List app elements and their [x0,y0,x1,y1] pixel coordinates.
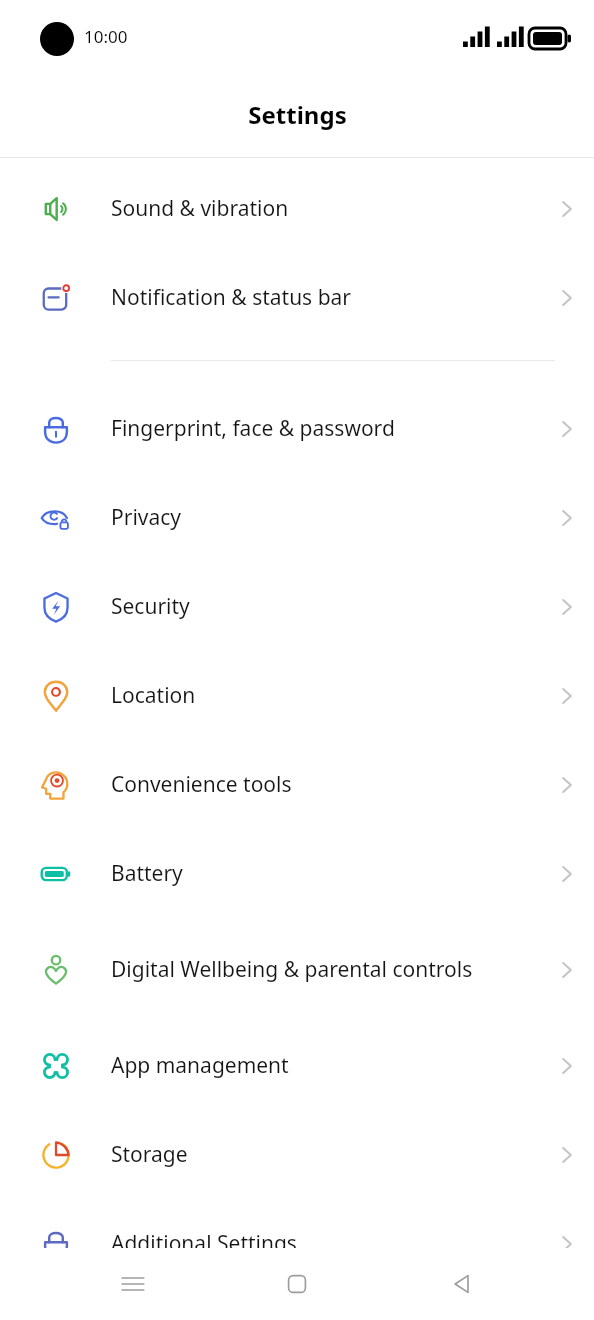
staticText: Security [111,592,515,621]
staticText: App management [111,1051,515,1080]
staticText: Sound & vibration [111,194,515,223]
button[interactable]: Additional Settings [0,1199,594,1288]
staticText: Storage [111,1140,515,1169]
staticText: Location [111,681,515,710]
staticText: Privacy [111,503,515,532]
staticText: Convenience tools [111,770,515,799]
button[interactable]: Location [0,651,594,740]
staticText: Digital Wellbeing & parental controls [111,955,515,984]
staticText: Fingerprint, face & password [111,414,515,443]
button[interactable]: Storage [0,1110,594,1199]
button[interactable]: Battery [0,829,594,918]
button[interactable]: Convenience tools [0,740,594,829]
button[interactable]: Sound & vibration [0,164,594,253]
staticText: Settings [248,98,347,131]
staticText: 10:00 [84,25,128,48]
staticText: Notification & status bar [111,283,515,312]
button[interactable]: Home [265,1252,329,1316]
button[interactable]: Recents [101,1252,165,1316]
button[interactable]: Privacy [0,473,594,562]
staticText: Battery [111,859,515,888]
button[interactable]: Notification & status bar [0,253,594,342]
button[interactable]: Back [430,1252,494,1316]
button[interactable]: Security [0,562,594,651]
button[interactable]: Fingerprint, face & password [0,384,594,473]
button[interactable]: App management [0,1021,594,1110]
button[interactable]: Digital Wellbeing & parental controls [0,918,594,1021]
staticText: Additional Settings [111,1229,515,1258]
